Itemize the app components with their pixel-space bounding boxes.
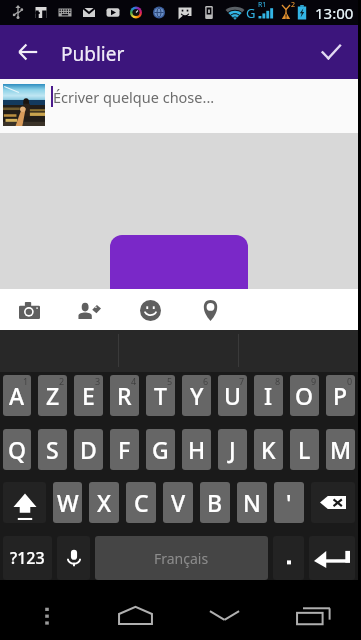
- button[interactable]: S: [38, 429, 67, 470]
- button[interactable]: Home: [91, 591, 180, 640]
- staticText: 1: [23, 375, 29, 387]
- button[interactable]: ?123: [3, 536, 52, 580]
- button[interactable]: N: [237, 482, 267, 523]
- staticText: 6: [203, 375, 209, 387]
- button[interactable]: Add location: [190, 290, 230, 330]
- staticText: J: [229, 434, 236, 465]
- staticText: ': [286, 487, 292, 518]
- staticText: 13:00: [315, 3, 354, 23]
- staticText: 2: [59, 375, 65, 387]
- button[interactable]: [273, 536, 304, 580]
- staticText: Écriver quelque chose...: [53, 87, 215, 107]
- staticText: 0: [347, 375, 353, 387]
- staticText: D: [80, 434, 97, 465]
- staticText: N: [243, 487, 261, 518]
- button[interactable]: V: [163, 482, 193, 523]
- button[interactable]: H: [182, 429, 211, 470]
- staticText: V: [171, 487, 186, 518]
- button[interactable]: F: [110, 429, 139, 470]
- button[interactable]: K: [254, 429, 283, 470]
- button[interactable]: Publish: [304, 25, 358, 79]
- button[interactable]: Back: [180, 591, 269, 640]
- button[interactable]: Recent apps: [269, 591, 358, 640]
- staticText: 2: [291, 0, 296, 10]
- staticText: 4: [131, 375, 137, 387]
- staticText: I: [264, 380, 273, 411]
- staticText: H: [188, 434, 206, 465]
- button[interactable]: Q: [3, 429, 31, 470]
- button[interactable]: C: [126, 482, 156, 523]
- staticText: 9: [311, 375, 317, 387]
- button[interactable]: L: [290, 429, 319, 470]
- staticText: Q: [8, 434, 27, 465]
- button[interactable]: Tag friends: [69, 290, 109, 330]
- button[interactable]: Enter: [309, 536, 355, 580]
- button[interactable]: E: [74, 375, 103, 416]
- button[interactable]: M: [326, 429, 355, 470]
- button[interactable]: ': [274, 482, 304, 523]
- staticText: C: [134, 487, 149, 518]
- button[interactable]: G: [146, 429, 175, 470]
- staticText: Publier: [61, 41, 125, 67]
- button[interactable]: D: [74, 429, 103, 470]
- staticText: B: [207, 487, 223, 518]
- staticText: R1: [258, 0, 267, 10]
- button[interactable]: T: [146, 375, 175, 416]
- staticText: W: [57, 487, 79, 518]
- staticText: A: [9, 380, 25, 411]
- button[interactable]: Français: [95, 536, 268, 580]
- button[interactable]: P: [326, 375, 355, 416]
- staticText: F: [118, 434, 131, 465]
- staticText: X: [97, 487, 112, 518]
- button[interactable]: A: [3, 375, 31, 416]
- staticText: 5: [167, 375, 173, 387]
- staticText: 8: [275, 375, 281, 387]
- staticText: L: [298, 434, 311, 465]
- button[interactable]: Voice input: [57, 536, 90, 580]
- button[interactable]: X: [89, 482, 119, 523]
- button[interactable]: Menu: [2, 591, 91, 640]
- button[interactable]: I: [254, 375, 283, 416]
- staticText: M: [330, 434, 352, 465]
- button[interactable]: Backspace: [311, 482, 355, 523]
- staticText: 7: [239, 375, 245, 387]
- button[interactable]: O: [290, 375, 319, 416]
- staticText: Y: [190, 380, 204, 411]
- staticText: O: [295, 380, 314, 411]
- staticText: T: [154, 380, 167, 411]
- button[interactable]: Shift: [3, 482, 46, 523]
- button[interactable]: Z: [38, 375, 67, 416]
- staticText: G: [246, 4, 256, 22]
- staticText: R: [117, 380, 132, 411]
- button[interactable]: [110, 235, 248, 289]
- staticText: G: [152, 434, 169, 465]
- button[interactable]: Y: [182, 375, 211, 416]
- staticText: Z: [46, 380, 60, 411]
- staticText: Français: [154, 549, 209, 568]
- staticText: U: [224, 380, 241, 411]
- staticText: S: [46, 434, 59, 465]
- staticText: ?123: [10, 547, 45, 569]
- button[interactable]: B: [200, 482, 230, 523]
- button[interactable]: J: [218, 429, 247, 470]
- button[interactable]: W: [53, 482, 82, 523]
- staticText: K: [261, 434, 276, 465]
- button[interactable]: U: [218, 375, 247, 416]
- button[interactable]: Add emoji: [130, 290, 170, 330]
- staticText: 3: [95, 375, 101, 387]
- button[interactable]: R: [110, 375, 139, 416]
- button[interactable]: Back: [0, 25, 56, 79]
- staticText: P: [333, 380, 348, 411]
- button[interactable]: Photo: [3, 84, 45, 126]
- staticText: E: [82, 380, 95, 411]
- button[interactable]: Add photo: [9, 290, 49, 330]
